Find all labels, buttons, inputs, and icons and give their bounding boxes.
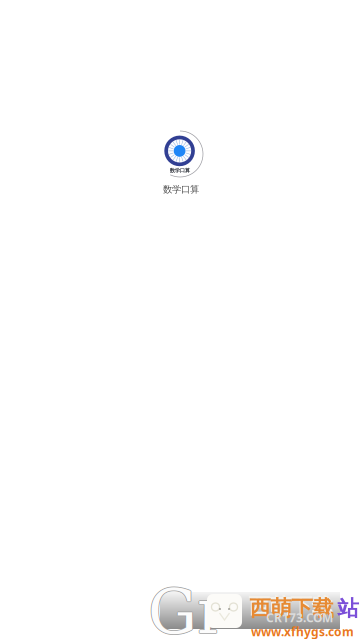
staticText: 西萌下载: [248, 593, 332, 619]
staticText: 数学口算: [170, 167, 190, 174]
staticText: Gr: [148, 577, 226, 640]
staticText: 西萌下载: [249, 595, 333, 622]
staticText: Gr: [149, 576, 227, 640]
staticText: www.xfhygs.com: [251, 623, 354, 639]
staticText: 站: [337, 595, 358, 622]
staticText: Gr: [148, 576, 226, 640]
staticText: Gr: [147, 576, 225, 640]
staticText: 数学口算: [163, 184, 199, 195]
staticText: Gr: [148, 575, 226, 640]
staticText: CR173.COM: [266, 609, 333, 625]
